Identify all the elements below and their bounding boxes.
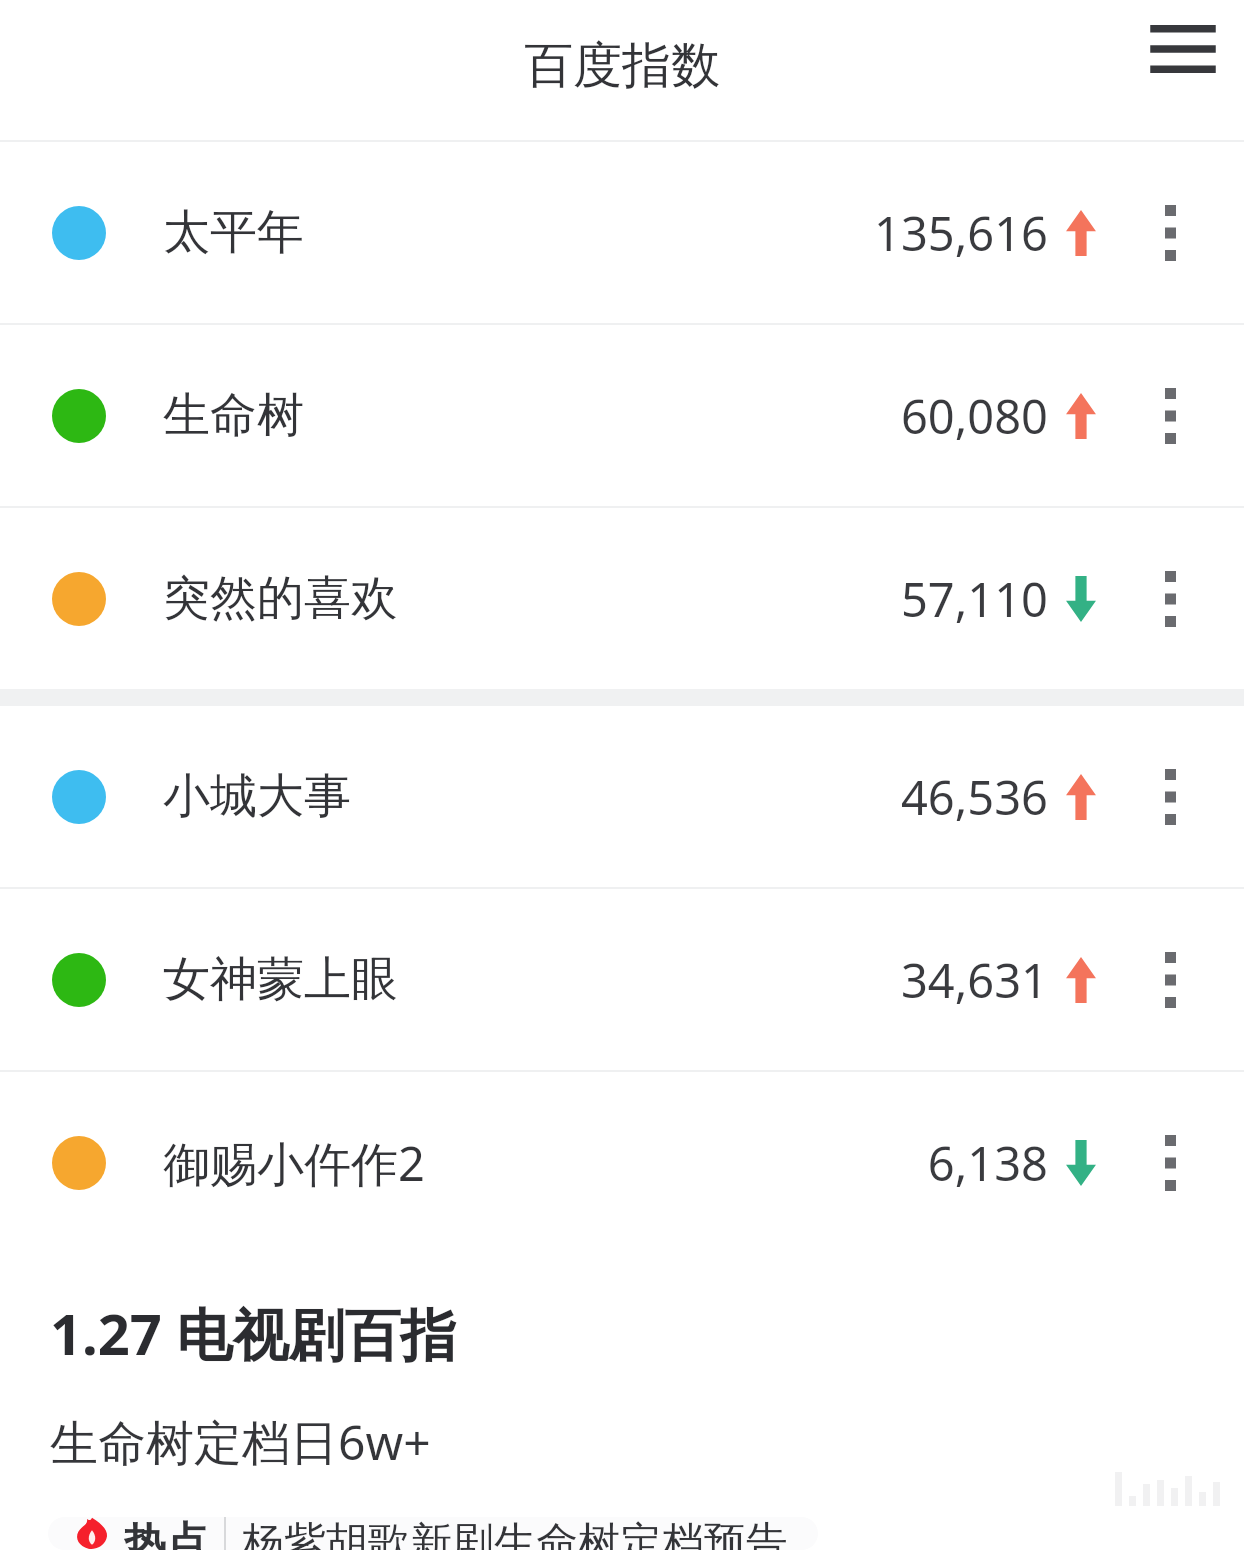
button[interactable]: 小城大事 <box>0 706 1244 887</box>
button[interactable]: More options <box>1142 388 1198 444</box>
button[interactable]: Menu <box>1144 10 1222 88</box>
button[interactable]: More options <box>1142 952 1198 1008</box>
staticText: 突然的喜欢 <box>163 569 398 628</box>
button[interactable]: More options <box>1142 1135 1198 1191</box>
staticText: 御赐小仵作2 <box>163 1131 425 1195</box>
button[interactable]: 热点 <box>48 1517 818 1550</box>
staticText: 百度指数 <box>524 35 720 97</box>
button[interactable]: More options <box>1142 205 1198 261</box>
staticText: 太平年 <box>163 203 304 262</box>
button[interactable]: 女神蒙上眼 <box>0 889 1244 1070</box>
staticText: 46,536 <box>900 765 1048 829</box>
staticText: 34,631 <box>900 948 1048 1012</box>
button[interactable]: More options <box>1142 571 1198 627</box>
button[interactable]: 生命树 <box>0 325 1244 506</box>
button[interactable]: 御赐小仵作2 <box>0 1072 1244 1253</box>
button[interactable]: More options <box>1142 769 1198 825</box>
staticText: 小城大事 <box>163 767 351 826</box>
button[interactable]: 突然的喜欢 <box>0 508 1244 689</box>
staticText: 生命树定档日6w+ <box>50 1409 431 1475</box>
staticText: 女神蒙上眼 <box>163 950 398 1009</box>
staticText: 生命树 <box>163 386 304 445</box>
staticText: 杨紫胡歌新剧生命树定档预告 <box>242 1517 788 1550</box>
staticText: 1.27 电视剧百指 <box>50 1295 457 1371</box>
staticText: 热点 <box>124 1517 208 1550</box>
staticText: 6,138 <box>927 1131 1048 1195</box>
staticText: 135,616 <box>874 201 1048 265</box>
staticText: 60,080 <box>900 384 1048 448</box>
staticText: 57,110 <box>900 567 1048 631</box>
button[interactable]: 太平年 <box>0 142 1244 323</box>
